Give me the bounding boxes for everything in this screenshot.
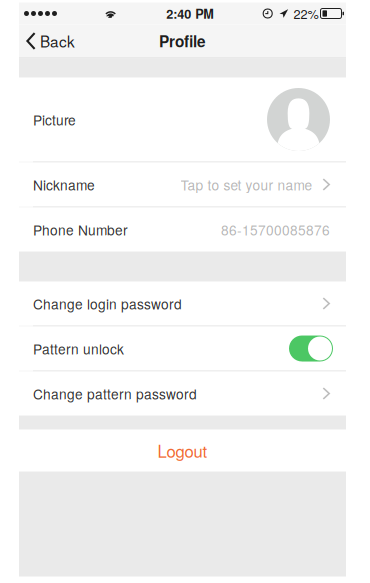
staticText: 22% — [293, 4, 318, 22]
staticText: Profile — [159, 30, 206, 52]
staticText: Nickname — [33, 175, 95, 194]
staticText: 86-15700085876 — [221, 220, 330, 239]
button[interactable]: Logout — [19, 429, 346, 471]
button[interactable]: Nickname — [19, 162, 346, 206]
staticText: Pattern unlock — [33, 339, 124, 358]
staticText: Phone Number — [33, 220, 128, 239]
staticText: Change pattern password — [33, 384, 197, 403]
staticText: Logout — [157, 439, 207, 462]
button[interactable]: Back — [19, 24, 82, 57]
button[interactable]: Change pattern password — [19, 371, 346, 415]
staticText: 2:40 PM — [166, 4, 214, 22]
staticText: Tap to set your name — [180, 175, 312, 194]
staticText: Change login password — [33, 294, 182, 313]
button[interactable]: Picture — [19, 77, 346, 161]
staticText: Back — [40, 30, 75, 52]
staticText: Picture — [33, 110, 76, 129]
button[interactable]: Change login password — [19, 281, 346, 325]
